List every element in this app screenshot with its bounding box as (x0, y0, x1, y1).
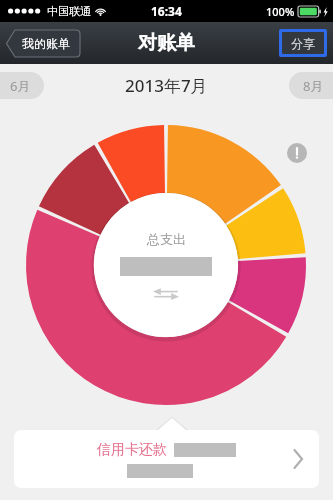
staticText: 分享 (291, 36, 315, 51)
button[interactable]: 我的账单 (6, 30, 80, 57)
button[interactable]: 信用卡还款 (14, 430, 319, 488)
staticText: 2013年7月 (125, 74, 208, 97)
staticText: 对账单 (138, 31, 195, 55)
button[interactable]: Switch view (153, 288, 179, 300)
staticText: 总支出 (147, 231, 186, 247)
staticText: 16:34 (151, 3, 182, 19)
button[interactable]: Info (287, 143, 307, 163)
button[interactable]: 6月 (0, 72, 44, 99)
staticText: 信用卡还款 (97, 441, 167, 459)
button[interactable]: 8月 (289, 72, 333, 99)
staticText: 6月 (10, 77, 31, 95)
staticText: 8月 (303, 77, 324, 95)
staticText: 我的账单 (22, 36, 70, 51)
staticText: 100% (266, 4, 295, 19)
button[interactable]: 分享 (282, 32, 324, 54)
staticText: 中国联通 (47, 4, 91, 18)
